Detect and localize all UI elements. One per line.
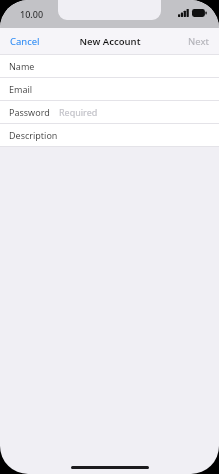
- button[interactable]: Name: [0, 55, 219, 77]
- button[interactable]: Description: [0, 124, 219, 146]
- button[interactable]: Cancel: [0, 29, 50, 54]
- staticText: Cancel: [10, 35, 40, 48]
- staticText: Name: [9, 60, 35, 72]
- other: Home indicator: [0, 458, 219, 474]
- button[interactable]: Next: [178, 29, 219, 54]
- staticText: Email: [9, 83, 33, 95]
- button[interactable]: Password: [0, 101, 219, 123]
- staticText: New Account: [79, 35, 141, 48]
- staticText: 10.00: [20, 8, 44, 20]
- staticText: Description: [9, 129, 58, 141]
- staticText: Required: [59, 106, 98, 118]
- staticText: Next: [188, 35, 209, 48]
- button[interactable]: Email: [0, 78, 219, 100]
- staticText: Password: [9, 106, 50, 118]
